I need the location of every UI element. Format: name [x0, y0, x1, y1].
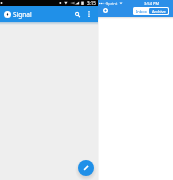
staticText: Archive [152, 9, 166, 14]
button[interactable]: Search [70, 7, 84, 21]
staticText: Inbox [136, 9, 147, 14]
button[interactable]: More options [84, 9, 94, 19]
staticText: 3:54 PM [144, 1, 160, 6]
button[interactable]: Inbox [134, 8, 149, 14]
staticText: 3:15 [87, 0, 96, 6]
button[interactable]: New message [78, 160, 94, 176]
button[interactable]: Archive [149, 8, 168, 14]
staticText: Signal [13, 10, 32, 19]
staticText: Sprint [106, 1, 118, 6]
